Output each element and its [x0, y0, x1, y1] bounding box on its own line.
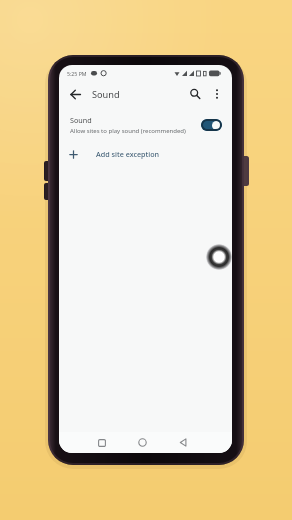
staticText: Allow sites to play sound (recommended)	[70, 127, 186, 135]
button[interactable]: Add site exception	[59, 145, 232, 163]
button[interactable]	[138, 438, 147, 447]
staticText: Add site exception	[96, 149, 160, 159]
staticText: Sound	[92, 88, 120, 101]
button[interactable]: Sound	[70, 115, 222, 135]
button[interactable]	[201, 119, 222, 131]
button[interactable]	[188, 87, 202, 101]
staticText: Sound	[70, 115, 92, 125]
staticText: 5:25 PM	[67, 70, 87, 77]
button[interactable]	[179, 438, 188, 447]
button[interactable]	[69, 88, 82, 101]
button[interactable]	[212, 87, 222, 101]
button[interactable]	[98, 439, 106, 447]
